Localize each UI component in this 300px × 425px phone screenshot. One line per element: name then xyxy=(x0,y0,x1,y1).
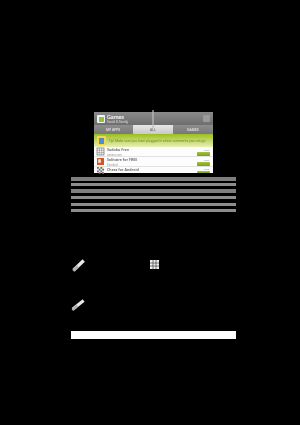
button[interactable]: Solitaire for FREE xyxy=(94,157,213,166)
button[interactable]: MY APPS xyxy=(94,125,133,134)
staticText: FREE xyxy=(204,148,210,151)
staticText: FREE xyxy=(204,158,210,161)
staticText: Chess for Android xyxy=(107,167,139,172)
staticText: Social & Family xyxy=(107,120,129,124)
button[interactable]: Tip! Make sure you have plugged in selec… xyxy=(94,134,213,147)
staticText: ALL xyxy=(150,127,156,132)
button[interactable]: GAMES xyxy=(173,125,213,134)
staticText: genina.com xyxy=(107,153,122,156)
button[interactable]: Chess for Android xyxy=(94,167,213,173)
staticText: Solitaire for FREE xyxy=(107,157,138,162)
button[interactable]: ALL xyxy=(133,125,173,134)
staticText: Sudoku Free xyxy=(107,147,130,152)
button[interactable]: Install Chess for Android xyxy=(197,171,210,173)
staticText: Games xyxy=(107,113,124,120)
button[interactable]: Install Solitaire for FREE xyxy=(197,162,210,166)
button[interactable]: Install Sudoku Free xyxy=(197,152,210,156)
staticText: FREE xyxy=(204,167,210,170)
staticText: Kingbird xyxy=(107,163,118,166)
staticText: Tip! Make sure you have plugged in selec… xyxy=(109,139,206,143)
staticText: MY APPS xyxy=(106,127,121,132)
button[interactable]: Sudoku Free xyxy=(94,147,213,156)
button[interactable]: Up xyxy=(97,115,105,123)
staticText: GAMES xyxy=(187,127,199,132)
